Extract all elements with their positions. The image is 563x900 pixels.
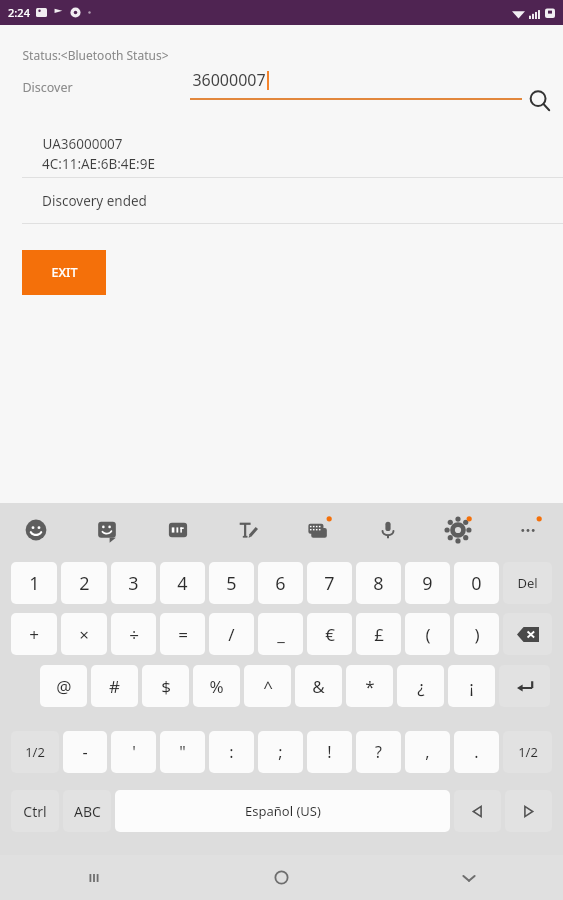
button[interactable]: ? (356, 731, 401, 773)
staticText: EXIT (51, 264, 78, 281)
button[interactable]: Voice input (353, 503, 423, 556)
staticText: 6 (275, 571, 286, 596)
staticText: ' (132, 741, 136, 763)
staticText: Discover (22, 79, 73, 96)
staticText: # (109, 675, 120, 698)
staticText: 7 (324, 571, 335, 596)
staticText: ¿ (417, 675, 425, 698)
button[interactable]: 3 (111, 562, 156, 604)
staticText: Ctrl (23, 802, 47, 821)
button[interactable]: @ (40, 665, 87, 707)
button[interactable]: Discovery ended (42, 192, 147, 210)
button[interactable]: Ctrl (11, 790, 59, 832)
button[interactable]: # (91, 665, 138, 707)
staticText: 5 (226, 571, 237, 596)
button[interactable]: % (193, 665, 240, 707)
button[interactable]: More options (493, 503, 563, 556)
button[interactable]: Home (187, 855, 375, 900)
staticText: ( (425, 623, 431, 646)
button[interactable]: * (346, 665, 393, 707)
button[interactable]: ! (307, 731, 352, 773)
staticText: UA36000007 (42, 135, 123, 153)
button[interactable]: 9 (405, 562, 450, 604)
button[interactable]: , (405, 731, 450, 773)
staticText: & (312, 675, 325, 698)
button[interactable]: = (160, 613, 205, 655)
button[interactable]: ¡ (448, 665, 495, 707)
button[interactable]: 4 (160, 562, 205, 604)
button[interactable]: + (11, 613, 57, 655)
button[interactable]: Recent apps (0, 855, 187, 900)
button[interactable]: Search (524, 85, 556, 117)
button[interactable]: 1/2 (11, 731, 59, 773)
button[interactable]: ; (258, 731, 303, 773)
button[interactable]: . (454, 731, 499, 773)
staticText: ? (375, 741, 382, 763)
staticText: Discovery ended (42, 192, 147, 210)
button[interactable]: ¿ (397, 665, 444, 707)
button[interactable]: Settings (423, 503, 493, 556)
button[interactable]: 1 (11, 562, 57, 604)
button[interactable]: 7 (307, 562, 352, 604)
button[interactable]: $ (142, 665, 189, 707)
staticText: 3 (128, 571, 139, 596)
staticText: ) (474, 623, 480, 646)
button[interactable]: Move cursor right (505, 790, 552, 832)
button[interactable]: 2 (61, 562, 107, 604)
button[interactable]: 5 (209, 562, 254, 604)
button[interactable]: Text edit (213, 503, 283, 556)
staticText: , (425, 741, 430, 763)
button[interactable]: Sticker (71, 503, 142, 556)
button[interactable]: 0 (454, 562, 499, 604)
staticText: / (228, 623, 235, 646)
staticText: ABC (74, 802, 101, 821)
button[interactable]: Enter (499, 665, 550, 707)
staticText: 2:24 (8, 5, 30, 20)
button[interactable]: GIF (142, 503, 213, 556)
staticText: $ (161, 675, 171, 698)
staticText: - (82, 741, 88, 763)
button[interactable]: Del (503, 562, 552, 604)
button[interactable]: Emoji (0, 503, 71, 556)
staticText: × (79, 623, 89, 646)
button[interactable]: : (209, 731, 254, 773)
button[interactable]: / (209, 613, 254, 655)
button[interactable]: UA36000007 (42, 135, 155, 173)
staticText: 2 (79, 571, 90, 596)
button[interactable]: Hide keyboard (375, 855, 563, 900)
button[interactable]: Español (US) (115, 790, 450, 832)
staticText: € (325, 623, 335, 646)
staticText: : (229, 741, 234, 763)
button[interactable]: ABC (63, 790, 111, 832)
button[interactable]: € (307, 613, 352, 655)
button[interactable]: ^ (244, 665, 291, 707)
button[interactable]: 6 (258, 562, 303, 604)
button[interactable]: ' (111, 731, 156, 773)
staticText: 4C:11:AE:6B:4E:9E (42, 155, 155, 173)
button[interactable]: " (160, 731, 205, 773)
button[interactable]: & (295, 665, 342, 707)
button[interactable]: 1/2 (503, 731, 552, 773)
button[interactable]: Keyboard modes (283, 503, 353, 556)
button[interactable]: £ (356, 613, 401, 655)
button[interactable]: × (61, 613, 107, 655)
staticText: * (365, 675, 375, 698)
staticText: _ (277, 623, 285, 646)
staticText: ¡ (469, 675, 474, 698)
staticText: 0 (471, 571, 482, 596)
button[interactable]: Move cursor left (454, 790, 501, 832)
button[interactable]: - (63, 731, 107, 773)
button[interactable]: EXIT (22, 250, 106, 295)
staticText: Español (US) (245, 802, 321, 820)
staticText: 4 (177, 571, 188, 596)
staticText: Status:<Bluetooth Status> (22, 47, 169, 63)
button[interactable]: 8 (356, 562, 401, 604)
button[interactable]: ( (405, 613, 450, 655)
button[interactable]: _ (258, 613, 303, 655)
staticText: " (179, 741, 186, 763)
button[interactable]: Backspace (503, 613, 552, 655)
staticText: ÷ (129, 623, 139, 646)
staticText: + (29, 623, 39, 646)
button[interactable]: ) (454, 613, 499, 655)
button[interactable]: ÷ (111, 613, 156, 655)
